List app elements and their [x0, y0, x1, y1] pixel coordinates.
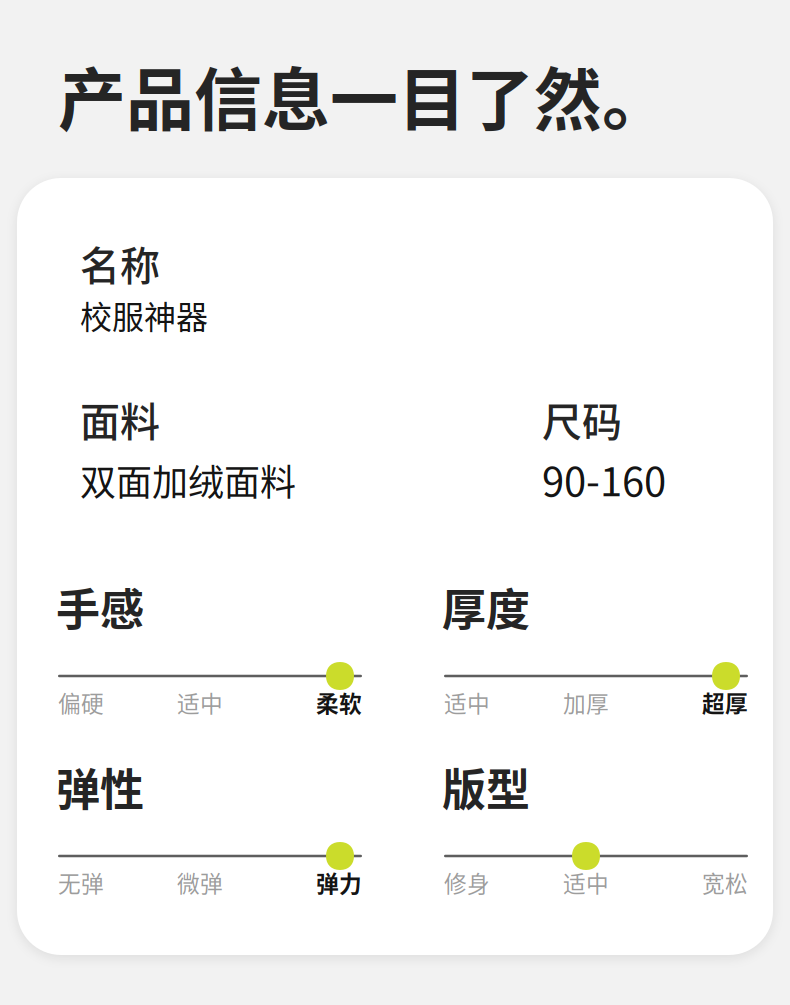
button[interactable]: 手感: [58, 575, 362, 713]
button[interactable]: 版型: [444, 755, 748, 893]
staticText: 版型: [442, 755, 530, 819]
staticText: 双面加绒面料: [80, 454, 296, 506]
staticText: 产品信息一目了然。: [58, 46, 670, 144]
staticText: 加厚: [563, 686, 609, 719]
staticText: 柔软: [316, 686, 362, 719]
staticText: 尺码: [542, 390, 622, 448]
staticText: 校服神器: [80, 292, 208, 338]
staticText: 弹力: [316, 866, 362, 899]
staticText: 超厚: [702, 686, 748, 719]
staticText: 适中: [563, 866, 609, 899]
button[interactable]: 弹性: [58, 755, 362, 893]
staticText: 手感: [56, 575, 144, 639]
staticText: 90-160: [542, 450, 666, 508]
staticText: 修身: [444, 866, 490, 899]
button[interactable]: 厚度: [444, 575, 748, 713]
staticText: 厚度: [442, 575, 530, 639]
staticText: 名称: [80, 234, 160, 292]
staticText: 面料: [80, 390, 160, 448]
staticText: 适中: [177, 686, 223, 719]
staticText: 微弹: [177, 866, 223, 899]
staticText: 无弹: [58, 866, 104, 899]
staticText: 宽松: [702, 866, 748, 899]
staticText: 偏硬: [58, 686, 104, 719]
staticText: 弹性: [56, 755, 144, 819]
staticText: 适中: [444, 686, 490, 719]
